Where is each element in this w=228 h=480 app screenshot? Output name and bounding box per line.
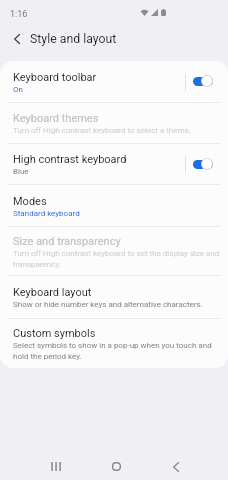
button[interactable]: High contrast keyboard [0,144,228,185]
staticText: 1:16 [10,9,28,20]
staticText: Keyboard themes [13,112,99,125]
button[interactable]: Recent apps [38,453,74,480]
staticText: High contrast keyboard [13,153,127,166]
button[interactable]: Custom symbols [0,319,228,368]
button[interactable]: Home [98,453,134,480]
staticText: Standard keyboard [13,209,80,218]
staticText: Blue [13,167,29,176]
staticText: Turn off High contrast keyboard to set t… [13,249,224,269]
staticText: Select symbols to show in a pop-up when … [13,341,224,361]
staticText: Style and layout [30,32,117,46]
staticText: On [13,85,23,94]
button[interactable]: Keyboard toolbar [185,61,228,103]
button[interactable]: Modes [0,185,228,227]
staticText: Show or hide number keys and alternative… [13,300,203,309]
staticText: Keyboard layout [13,286,92,299]
staticText: Keyboard toolbar [13,71,97,84]
button[interactable]: Navigate up [8,30,26,48]
button[interactable]: Back [158,453,194,480]
staticText: Modes [13,195,47,208]
button[interactable]: Keyboard themes [0,103,228,144]
button[interactable]: Keyboard layout [0,276,228,319]
button[interactable]: Keyboard toolbar [0,61,228,103]
staticText: Size and transparency [13,235,121,248]
button[interactable]: Size and transparency [0,227,228,276]
staticText: Custom symbols [13,327,96,340]
staticText: Turn off High contrast keyboard to selec… [13,126,191,135]
button[interactable]: High contrast keyboard [185,144,228,185]
